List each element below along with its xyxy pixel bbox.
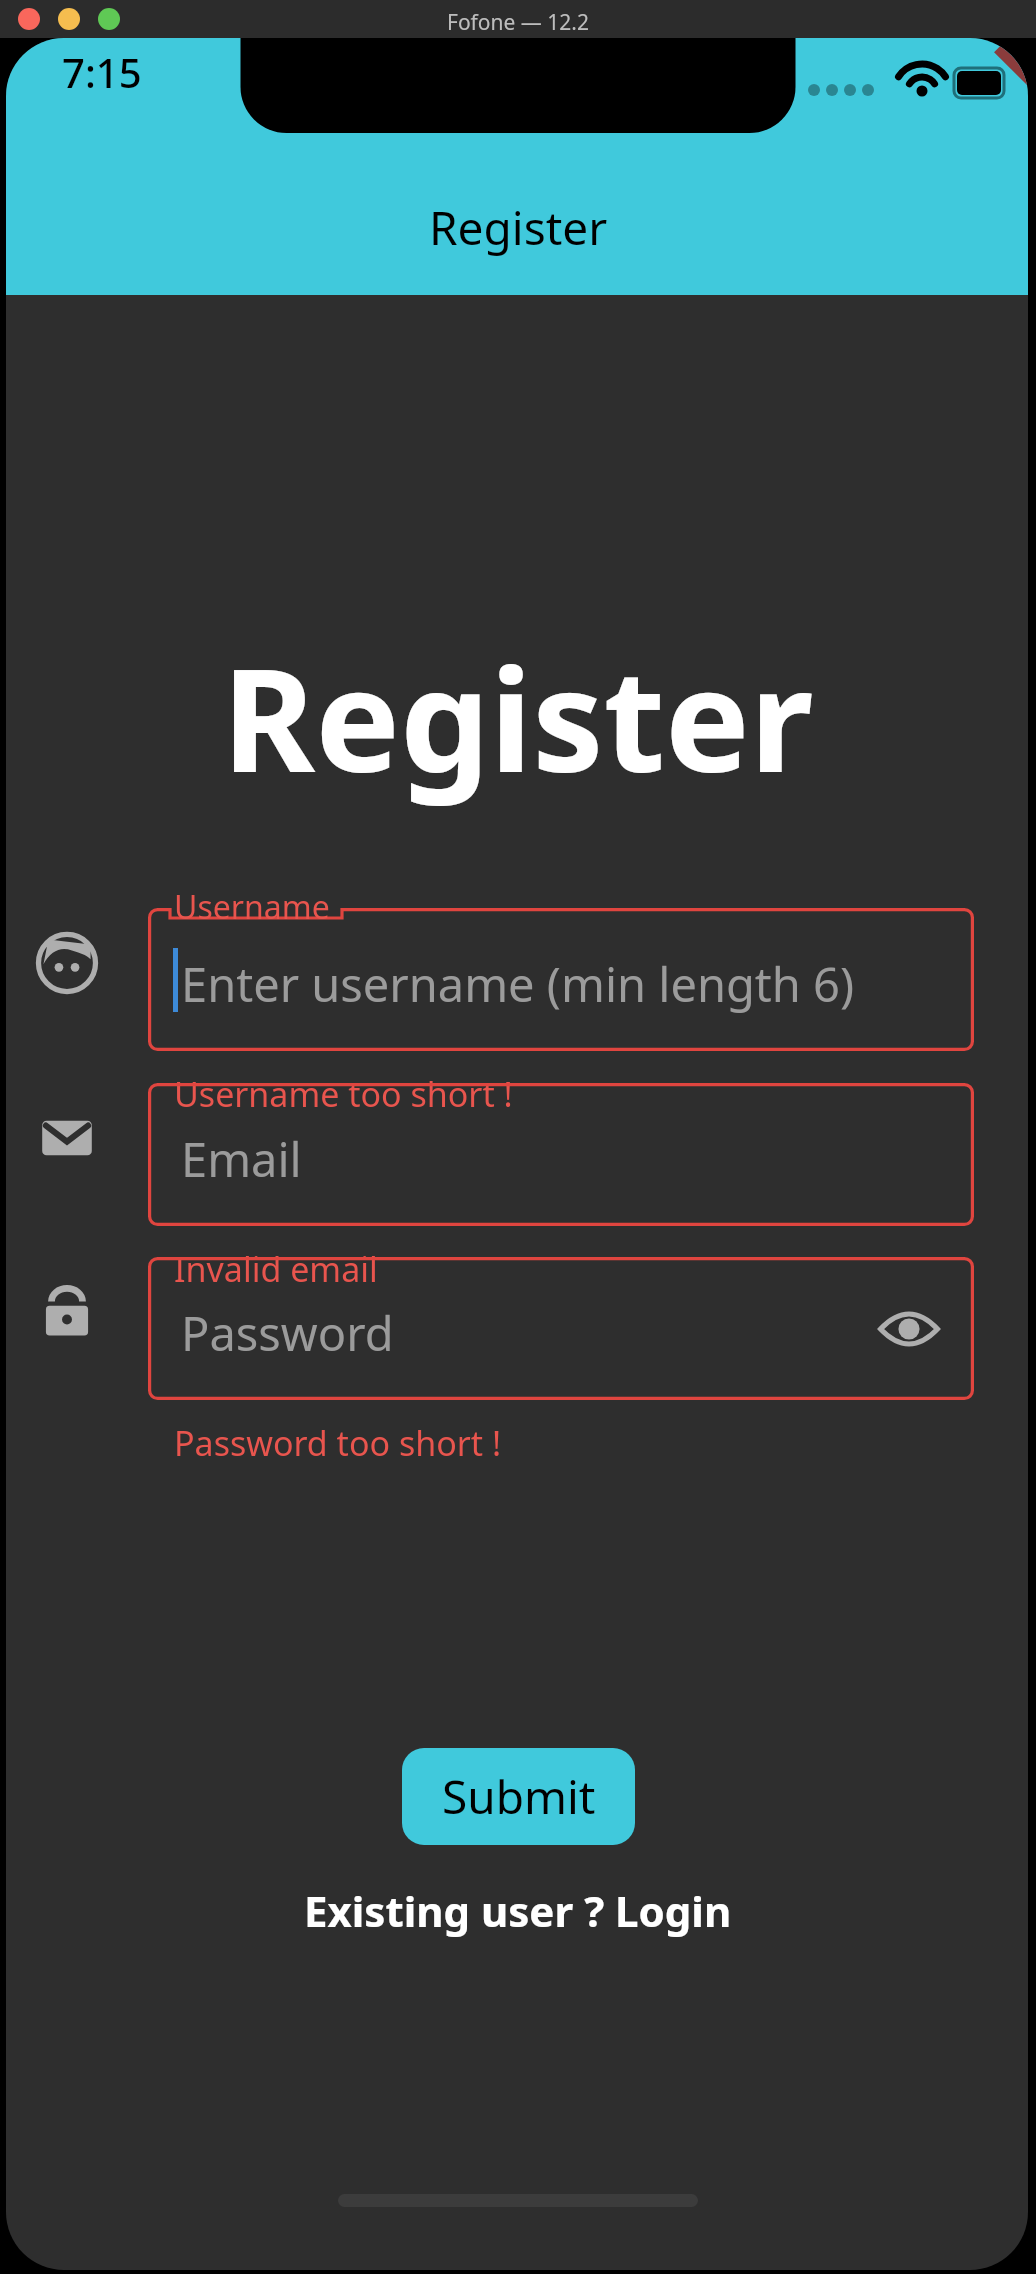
- staticText: Username: [174, 885, 330, 929]
- staticText: Register: [429, 196, 608, 259]
- staticText: Password too short !: [174, 1420, 502, 1466]
- staticText: 7:15: [62, 45, 142, 99]
- staticText: Enter username (min length 6): [181, 952, 855, 1016]
- staticText: Register: [222, 620, 814, 813]
- other: Password: [36, 1281, 98, 1343]
- button[interactable]: Toggle password visibility: [878, 1307, 940, 1351]
- other: Account: [36, 932, 98, 994]
- staticText: Password: [181, 1301, 394, 1365]
- other: Email: [36, 1107, 98, 1169]
- staticText: Invalid email: [174, 1246, 378, 1292]
- staticText: Email: [181, 1127, 302, 1191]
- staticText: Fofone — 12.2: [447, 8, 589, 37]
- staticText: Existing user ? Login: [304, 1882, 732, 1939]
- button[interactable]: Existing user ? Login: [304, 1882, 732, 1939]
- staticText: Username too short !: [174, 1071, 513, 1117]
- button[interactable]: Submit: [402, 1748, 635, 1845]
- staticText: Submit: [442, 1765, 596, 1828]
